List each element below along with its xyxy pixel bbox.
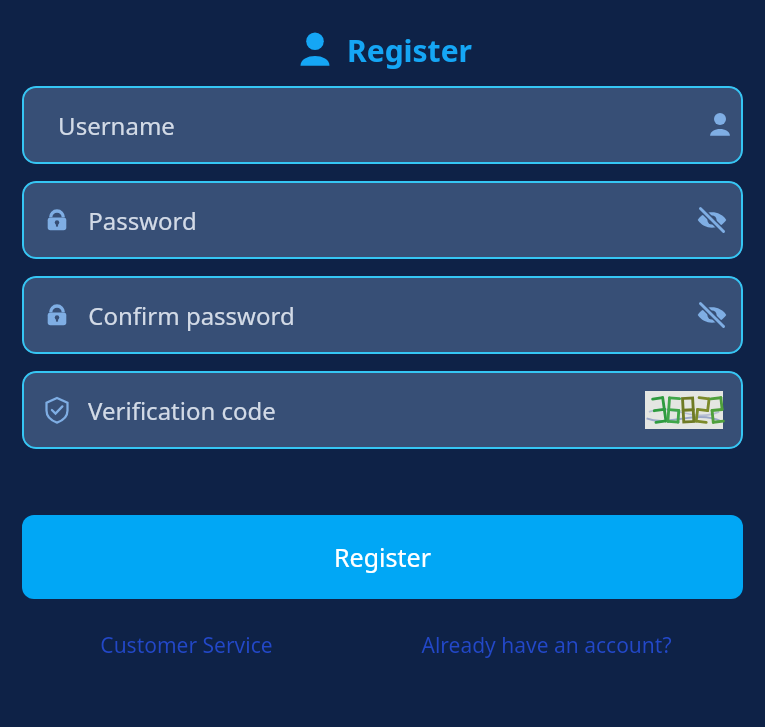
staticText: Confirm password [88, 299, 295, 332]
staticText: Password [88, 204, 197, 237]
button[interactable]: Already have an account? [350, 631, 743, 660]
staticText: Register [334, 540, 431, 574]
button[interactable]: Verification code [22, 371, 743, 449]
button[interactable]: Show confirm password [689, 292, 735, 338]
staticText: Verification code [88, 394, 276, 427]
staticText: Already have an account? [421, 631, 672, 660]
button[interactable]: Customer Service [22, 631, 350, 660]
button[interactable]: Confirm password [22, 276, 743, 354]
button[interactable]: Show password [689, 197, 735, 243]
staticText: Customer Service [100, 631, 273, 660]
staticText: Register [347, 30, 472, 71]
button[interactable]: Username [22, 86, 743, 164]
button[interactable]: Password [22, 181, 743, 259]
button[interactable]: Register [22, 515, 743, 599]
staticText: Username [58, 109, 175, 142]
button[interactable]: Refresh verification code [645, 391, 723, 429]
